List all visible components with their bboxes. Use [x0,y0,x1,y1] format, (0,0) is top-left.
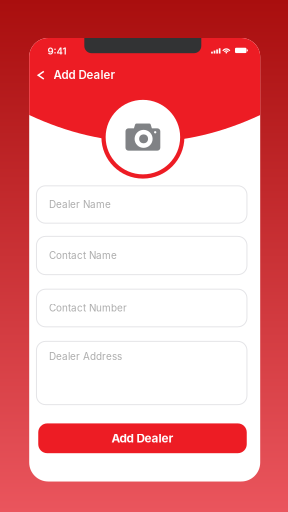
button[interactable]: Dealer Name [36,186,247,223]
staticText: Contact Number [49,302,127,314]
button[interactable]: Back [31,64,51,86]
button[interactable]: Add Dealer [38,423,247,453]
staticText: Contact Name [49,249,117,261]
button[interactable]: Add Dealer [54,64,194,86]
button[interactable]: Contact Name [36,236,247,275]
staticText: Add Dealer [54,68,116,82]
staticText: Dealer Address [49,350,122,362]
button[interactable]: Contact Number [36,289,247,327]
staticText: Add Dealer [111,431,173,445]
staticText: Dealer Name [49,198,111,210]
button[interactable]: Add photo [101,96,184,179]
staticText: 9:41 [48,45,67,57]
button[interactable]: Dealer Address [36,341,247,405]
